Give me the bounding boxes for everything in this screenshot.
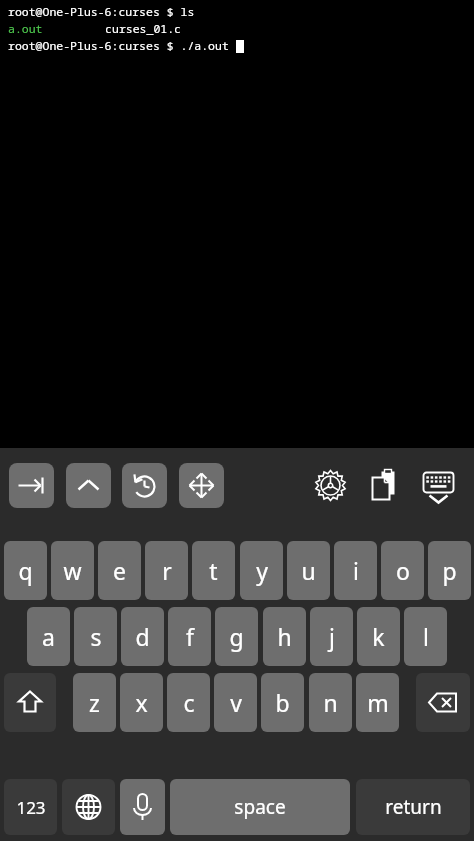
button[interactable]: p — [428, 541, 471, 600]
staticText: b — [275, 687, 290, 718]
button[interactable]: g — [215, 607, 258, 666]
button[interactable]: f — [168, 607, 211, 666]
button[interactable]: k — [357, 607, 400, 666]
button[interactable]: i — [334, 541, 377, 600]
button[interactable]: z — [73, 673, 116, 732]
staticText: y — [256, 555, 268, 586]
button[interactable]: Tab — [9, 463, 54, 508]
staticText: d — [135, 621, 150, 652]
staticText: u — [301, 555, 316, 586]
button[interactable]: h — [263, 607, 306, 666]
button[interactable]: d — [121, 607, 164, 666]
staticText: space — [234, 794, 286, 820]
button[interactable]: Undo — [122, 463, 167, 508]
button[interactable]: y — [240, 541, 283, 600]
button[interactable]: space — [170, 779, 350, 835]
staticText: root@One-Plus-6:curses $ ./a.out — [8, 38, 236, 54]
button[interactable]: m — [356, 673, 399, 732]
button[interactable]: q — [4, 541, 47, 600]
staticText: n — [323, 687, 338, 718]
button[interactable]: c — [167, 673, 210, 732]
staticText: f — [186, 621, 194, 652]
staticText: r — [162, 555, 172, 586]
button[interactable]: n — [309, 673, 352, 732]
staticText: v — [230, 687, 242, 718]
button[interactable]: t — [192, 541, 235, 600]
staticText: m — [367, 687, 389, 718]
staticText: 123 — [16, 796, 46, 819]
staticText: g — [229, 621, 244, 652]
staticText: h — [277, 621, 292, 652]
staticText: o — [396, 555, 410, 586]
staticText: c — [183, 687, 195, 718]
staticText: return — [385, 794, 442, 820]
staticText: curses_01.c — [43, 21, 181, 37]
button[interactable]: Paste — [361, 463, 406, 508]
staticText: s — [90, 621, 102, 652]
button[interactable]: l — [404, 607, 447, 666]
staticText: w — [63, 555, 82, 586]
staticText: i — [353, 555, 359, 586]
staticText: j — [329, 621, 335, 652]
staticText: z — [89, 687, 100, 718]
button[interactable]: Change keyboard language — [62, 779, 115, 835]
button[interactable]: w — [51, 541, 94, 600]
button[interactable]: o — [381, 541, 424, 600]
button[interactable]: r — [145, 541, 188, 600]
button[interactable]: j — [310, 607, 353, 666]
staticText: p — [442, 555, 457, 586]
button[interactable]: b — [261, 673, 304, 732]
button[interactable]: Escape up — [66, 463, 111, 508]
button[interactable]: 123 — [4, 779, 57, 835]
staticText: a — [42, 621, 55, 652]
staticText: q — [18, 555, 33, 586]
button[interactable]: v — [214, 673, 257, 732]
staticText: k — [372, 621, 385, 652]
button[interactable]: u — [287, 541, 330, 600]
staticText: x — [135, 687, 148, 718]
button[interactable]: Shift — [4, 673, 56, 732]
staticText: t — [209, 555, 218, 586]
button[interactable]: Settings — [308, 463, 353, 508]
button[interactable]: Move cursor — [179, 463, 224, 508]
button[interactable]: return — [356, 779, 470, 835]
button[interactable]: x — [120, 673, 163, 732]
button[interactable]: a — [27, 607, 70, 666]
button[interactable]: e — [98, 541, 141, 600]
staticText: a.out — [8, 21, 43, 37]
button[interactable]: s — [74, 607, 117, 666]
staticText: root@One-Plus-6:curses $ ls — [8, 4, 195, 20]
button[interactable]: Backspace — [416, 673, 470, 732]
staticText: e — [113, 555, 126, 586]
staticText: l — [423, 621, 429, 652]
button[interactable]: Voice input — [120, 779, 165, 835]
button[interactable]: Hide keyboard — [416, 463, 461, 508]
